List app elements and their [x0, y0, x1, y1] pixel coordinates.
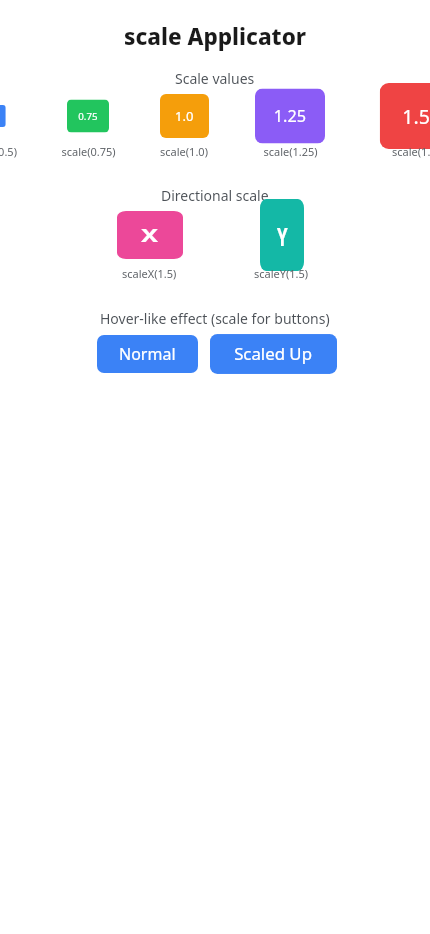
button[interactable]: Normal — [97, 335, 198, 373]
staticText: Scaled Up — [234, 342, 313, 366]
button[interactable]: Scaled Up — [210, 334, 337, 374]
staticText: scale(0.75) — [61, 144, 116, 159]
staticText: scale(1.0) — [160, 144, 208, 159]
button[interactable]: 1.0 — [160, 94, 209, 138]
staticText: 1.0 — [175, 107, 194, 125]
button[interactable]: 1.5 — [380, 83, 430, 149]
staticText: 0.75 — [78, 109, 98, 123]
staticText: scale(1.25) — [263, 144, 318, 159]
staticText: scale(0.5) — [0, 144, 17, 159]
staticText: Y — [277, 218, 288, 253]
button[interactable]: X — [117, 211, 183, 259]
staticText: 1.25 — [274, 105, 306, 127]
button[interactable]: 1.25 — [255, 88, 325, 143]
staticText: X — [141, 224, 159, 247]
staticText: scaleX(1.5) — [122, 266, 177, 281]
staticText: scale(1.5) — [392, 144, 430, 159]
button[interactable]: 0.75 — [67, 99, 109, 132]
staticText: 1.5 — [402, 102, 430, 129]
button[interactable]: Y — [260, 199, 304, 271]
staticText: Hover-like effect (scale for buttons) — [100, 309, 330, 328]
staticText: Directional scale — [161, 186, 269, 205]
staticText: Scale values — [175, 69, 255, 88]
staticText: scale Applicator — [124, 21, 307, 52]
staticText: Normal — [119, 343, 176, 365]
button[interactable]: 0.5 — [0, 105, 6, 127]
staticText: scaleY(1.5) — [254, 266, 309, 281]
